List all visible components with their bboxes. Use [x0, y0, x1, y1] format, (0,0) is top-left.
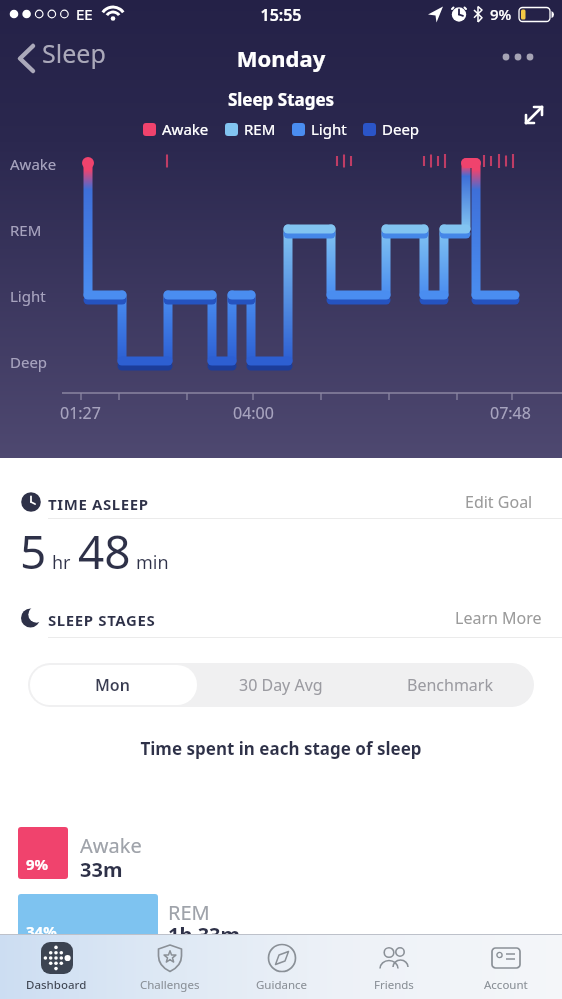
staticText: Awake	[10, 154, 57, 174]
staticText: hr	[52, 550, 71, 575]
button[interactable]: 30 Day Avg	[196, 663, 365, 707]
button[interactable]: Friends	[338, 935, 450, 999]
staticText: REM	[244, 119, 276, 139]
button[interactable]: Account	[450, 935, 562, 999]
staticText: 07:48	[490, 402, 531, 424]
staticText: EE	[76, 4, 93, 24]
staticText: REM	[168, 899, 210, 926]
staticText: 04:00	[233, 402, 274, 424]
button[interactable]: Benchmark	[365, 663, 534, 707]
staticText: Account	[484, 977, 528, 993]
staticText: Learn More	[455, 607, 542, 629]
button[interactable]	[514, 98, 554, 132]
button[interactable]: Edit Goal	[465, 491, 555, 517]
staticText: Benchmark	[407, 674, 493, 696]
staticText: Awake	[80, 832, 142, 859]
button[interactable]: Learn More	[455, 607, 555, 633]
staticText: min	[136, 550, 169, 575]
button[interactable]: Guidance	[226, 935, 338, 999]
button[interactable]: Challenges	[113, 935, 226, 999]
staticText: Light	[311, 119, 347, 139]
staticText: Light	[10, 286, 46, 306]
staticText: Time spent in each stage of sleep	[0, 737, 562, 760]
staticText: Monday	[0, 43, 562, 73]
staticText: Awake	[162, 119, 209, 139]
staticText: 48	[78, 520, 131, 583]
staticText: TIME ASLEEP	[48, 494, 149, 514]
staticText: 30 Day Avg	[239, 674, 323, 696]
button[interactable]: Dashboard	[0, 935, 113, 999]
button[interactable]: Mon	[28, 663, 196, 707]
button[interactable]: Sleep	[8, 36, 118, 80]
staticText: Friends	[374, 977, 414, 993]
staticText: 9%	[26, 854, 49, 874]
staticText: Challenges	[140, 977, 200, 993]
staticText: Dashboard	[26, 977, 87, 993]
staticText: REM	[10, 220, 42, 240]
staticText: 34%	[26, 921, 57, 941]
staticText: 01:27	[60, 402, 101, 424]
staticText: Sleep	[42, 36, 106, 70]
button[interactable]	[494, 42, 550, 72]
staticText: 33m	[80, 856, 123, 883]
staticText: Mon	[95, 674, 130, 696]
staticText: 1h 33m	[168, 921, 241, 948]
staticText: SLEEP STAGES	[48, 610, 156, 630]
staticText: Sleep Stages	[0, 88, 562, 111]
staticText: 5	[20, 520, 47, 583]
staticText: Guidance	[256, 977, 308, 993]
staticText: 15:55	[0, 4, 562, 26]
staticText: Deep	[382, 119, 420, 139]
staticText: 9%	[490, 4, 512, 24]
staticText: Edit Goal	[465, 491, 533, 513]
staticText: Deep	[10, 352, 48, 372]
